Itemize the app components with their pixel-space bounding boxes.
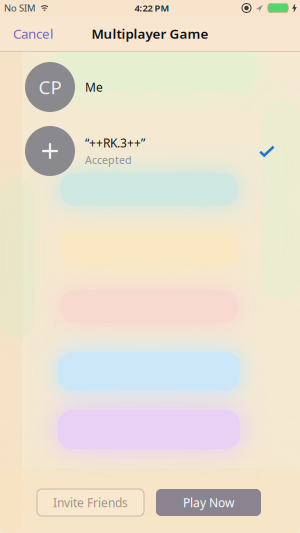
button[interactable]: Invite Friends [37, 489, 144, 516]
staticText: Me [85, 79, 103, 95]
staticText: Cancel [13, 25, 53, 42]
staticText: 4:22 PM [134, 2, 169, 14]
staticText: Play Now [183, 494, 234, 510]
staticText: No SIM [4, 2, 35, 14]
button[interactable]: Play Now [156, 489, 261, 516]
button[interactable]: “++RK.3++” [0, 126, 300, 176]
button[interactable]: Cancel [0, 25, 53, 42]
staticText: CP [38, 75, 61, 99]
staticText: Invite Friends [53, 494, 128, 510]
staticText: Multiplayer Game [91, 25, 208, 42]
staticText: “++RK.3++” [85, 135, 145, 151]
staticText: Accepted [85, 153, 132, 167]
